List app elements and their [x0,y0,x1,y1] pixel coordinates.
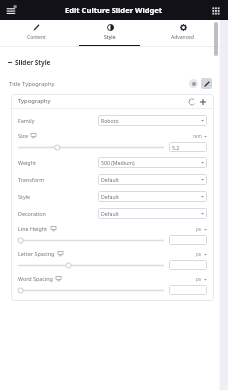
button[interactable]: Global fonts [189,79,198,88]
button[interactable]: px [196,276,207,282]
staticText: Typography [18,97,51,105]
staticText: Transform [18,176,98,183]
button[interactable]: Edit typography [201,78,212,89]
staticText: Weight [18,159,98,166]
staticText: Style [104,34,116,41]
button[interactable]: 5.2 [169,142,207,152]
staticText: Default [101,210,119,217]
button[interactable]: px [196,226,207,232]
button[interactable]: Content [0,20,73,47]
button[interactable]: Responsive Size [31,133,36,138]
staticText: Line Height [18,225,48,232]
staticText: Size [18,132,28,139]
button[interactable]: Letter Spacing slider [18,262,164,269]
button[interactable]: 500 (Medium) [98,157,207,168]
button[interactable]: Slider Style [0,56,228,68]
button[interactable]: Advanced [146,20,219,47]
button[interactable] [169,235,207,245]
staticText: Title Typography [9,80,55,88]
button[interactable]: Apps grid [209,4,222,17]
button[interactable]: Responsive Letter Spacing [58,251,63,256]
staticText: Content [27,34,46,41]
staticText: Default [101,176,119,183]
button[interactable] [169,260,207,270]
staticText: px [196,276,202,282]
staticText: Advanced [171,34,195,41]
staticText: 500 (Medium) [101,159,135,166]
staticText: Slider Style [15,58,51,67]
button[interactable]: Default [98,174,207,185]
button[interactable]: Default [98,191,207,202]
staticText: Family [18,117,98,124]
staticText: px [196,226,202,232]
staticText: Style [18,193,98,200]
staticText: Decoration [18,210,98,217]
staticText: Roboto [101,117,119,124]
button[interactable]: Menu [4,2,20,18]
staticText: 5.2 [172,144,180,151]
button[interactable]: Size slider [18,144,164,151]
button[interactable]: Line Height slider [18,237,164,244]
button[interactable]: Responsive Line Height [51,226,56,231]
staticText: Edit Culture Slider Widget [65,5,163,15]
button[interactable]: Reset [187,97,196,106]
staticText: px [196,251,202,257]
button[interactable]: Add [198,97,207,106]
staticText: Word Spacing [18,275,53,282]
button[interactable]: Responsive Word Spacing [56,276,61,281]
button[interactable]: Roboto [98,115,207,126]
button[interactable]: Style [73,20,146,47]
button[interactable]: rem [193,133,207,139]
staticText: Letter Spacing [18,250,55,257]
staticText: Default [101,193,119,200]
button[interactable]: px [196,251,207,257]
button[interactable]: Word Spacing slider [18,287,164,294]
button[interactable] [169,285,207,295]
staticText: rem [193,133,202,139]
button[interactable]: Default [98,208,207,219]
